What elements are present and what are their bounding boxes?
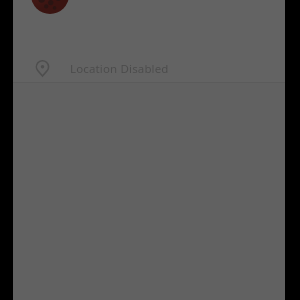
button[interactable]: Profile photo (31, 0, 69, 14)
button[interactable]: Location disabled (13, 55, 285, 82)
other: Location disabled (32, 58, 53, 79)
staticText: Location Disabled (70, 61, 169, 77)
